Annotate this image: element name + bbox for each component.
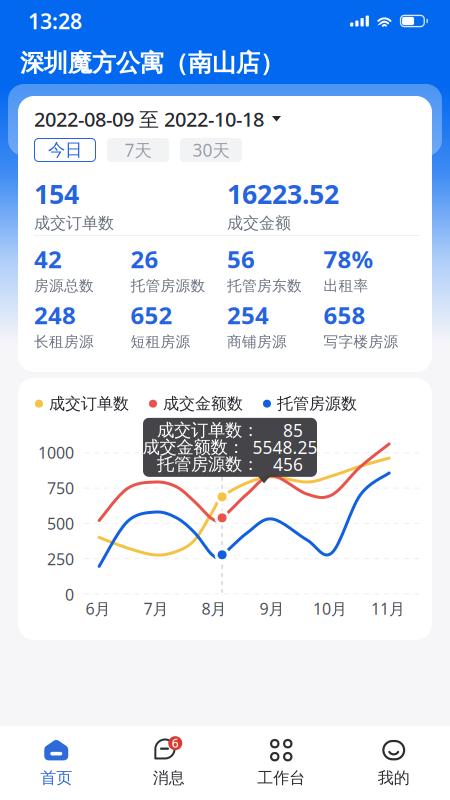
staticText: 42 (34, 243, 62, 275)
staticText: 56 (227, 243, 255, 275)
staticText: 6 (172, 735, 179, 751)
staticText: 30天 (192, 138, 229, 161)
staticText: 成交订单数： (157, 420, 259, 441)
staticText: 254 (227, 299, 269, 331)
staticText: 商铺房源 (227, 333, 287, 351)
staticText: 成交金额数 (163, 394, 243, 413)
staticText: 房源总数 (34, 277, 94, 295)
staticText: 500 (47, 513, 74, 534)
button[interactable]: 6 (112, 726, 225, 800)
staticText: 7天 (124, 138, 151, 161)
staticText: 154 (34, 176, 79, 211)
staticText: 652 (130, 299, 172, 331)
staticText: 消息 (153, 768, 185, 788)
staticText: 78% (323, 243, 373, 275)
staticText: 11月 (371, 598, 405, 619)
staticText: 1000 (38, 442, 74, 463)
staticText: 成交金额数： (142, 437, 244, 458)
staticText: 6月 (85, 598, 110, 619)
staticText: 托管房源数 (130, 277, 205, 295)
staticText: 首页 (40, 768, 72, 788)
staticText: 我的 (378, 768, 410, 788)
staticText: 成交订单数 (34, 213, 114, 233)
staticText: 250 (47, 548, 74, 570)
button[interactable]: 今日 (34, 138, 96, 162)
staticText: 托管房源数 (277, 394, 357, 413)
button[interactable]: 7天 (107, 138, 169, 162)
staticText: 248 (34, 299, 76, 331)
button[interactable]: 我的 (337, 726, 450, 800)
staticText: 托管房东数 (227, 277, 302, 295)
staticText: 750 (47, 477, 74, 499)
button[interactable]: 2022-08-09 至 2022-10-18 (34, 108, 420, 130)
staticText: 成交订单数 (49, 394, 129, 413)
staticText: 今日 (48, 139, 82, 161)
staticText: 658 (323, 299, 365, 331)
staticText: 成交金额 (227, 213, 291, 233)
staticText: 26 (130, 243, 158, 275)
staticText: 8月 (201, 598, 226, 619)
staticText: 456 (273, 453, 303, 476)
staticText: 短租房源 (130, 333, 190, 351)
staticText: 13:28 (28, 7, 82, 35)
button[interactable]: 工作台 (225, 726, 337, 800)
staticText: 10月 (313, 598, 347, 619)
staticText: 写字楼房源 (323, 333, 398, 351)
button[interactable]: 首页 (0, 726, 112, 800)
staticText: 7月 (143, 598, 168, 619)
staticText: 9月 (259, 598, 284, 619)
staticText: 0 (65, 584, 74, 605)
staticText: 16223.52 (227, 176, 339, 211)
staticText: 85 (283, 419, 303, 442)
staticText: 深圳魔方公寓（南山店） (20, 48, 284, 78)
staticText: 长租房源 (34, 333, 94, 351)
staticText: 5548.25 (252, 436, 317, 459)
staticText: 托管房源数： (157, 454, 259, 475)
staticText: 2022-08-09 至 2022-10-18 (34, 106, 264, 132)
staticText: 工作台 (257, 768, 305, 788)
staticText: 出租率 (323, 277, 368, 295)
button[interactable]: 30天 (180, 138, 242, 162)
